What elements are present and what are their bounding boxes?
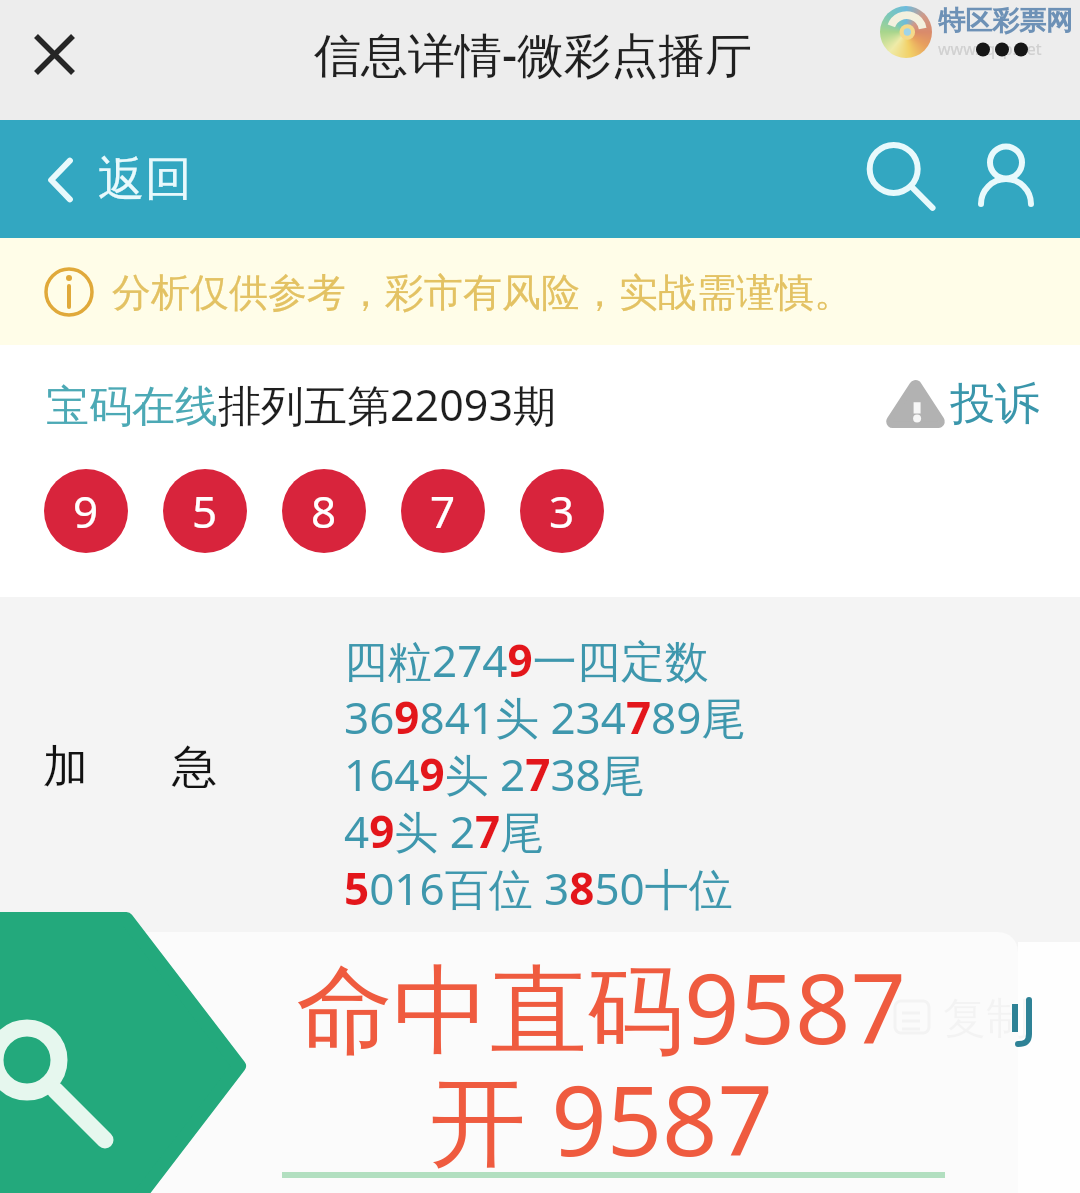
staticText: 急 (172, 739, 217, 796)
staticText: www.tqcp.net (938, 38, 1042, 60)
button[interactable]: 返回 (47, 150, 192, 209)
button[interactable]: Copy (893, 992, 1029, 1046)
staticText: 加 (43, 739, 88, 796)
staticText: 四粒2749一四定数 369841头 234789尾 1649头 2738尾 4… (344, 630, 746, 918)
staticText: 特区彩票网 (938, 4, 1073, 38)
staticText: 宝码在线排列五第22093期 (46, 375, 556, 434)
button[interactable]: Close (18, 18, 91, 91)
staticText: 3 (549, 481, 575, 541)
staticText: 命中直码9587 开 9587 (184, 940, 1018, 1185)
button[interactable]: 投诉 (889, 376, 1040, 433)
staticText: 8 (311, 481, 337, 541)
button[interactable]: Search (0, 912, 246, 1193)
button[interactable]: Search (855, 136, 941, 222)
staticText: 信息详情-微彩点播厅 (314, 22, 753, 86)
button[interactable]: Account (963, 136, 1049, 222)
staticText: 7 (430, 481, 456, 541)
staticText: 5 (192, 481, 218, 541)
staticText: 返回 (98, 150, 192, 209)
staticText: 9 (73, 481, 99, 541)
staticText: 复制 (943, 992, 1029, 1046)
staticText: 投诉 (950, 376, 1040, 433)
staticText: 分析仅供参考，彩市有风险，实战需谨慎。 (112, 268, 853, 317)
